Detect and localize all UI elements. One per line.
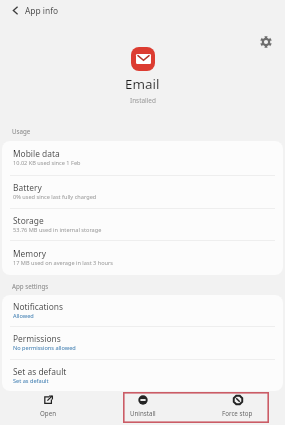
button[interactable]: Memory bbox=[2, 241, 283, 275]
staticText: Storage bbox=[13, 215, 44, 226]
button[interactable]: Settings bbox=[255, 31, 276, 52]
staticText: Open bbox=[40, 409, 56, 417]
other: Uninstall bbox=[138, 395, 148, 405]
staticText: 53.76 MB used in internal storage bbox=[13, 226, 102, 234]
staticText: Uninstall bbox=[130, 409, 156, 417]
button[interactable]: Storage bbox=[2, 209, 283, 240]
staticText: App settings bbox=[12, 282, 49, 290]
staticText: Permissions bbox=[13, 333, 61, 344]
staticText: Email bbox=[125, 75, 160, 93]
button[interactable]: Back bbox=[0, 2, 67, 19]
staticText: Mobile data bbox=[13, 148, 60, 159]
staticText: 17 MB used on average in last 3 hours bbox=[13, 259, 114, 267]
staticText: Notifications bbox=[13, 301, 63, 312]
staticText: Battery bbox=[13, 182, 42, 193]
staticText: No permissions allowed bbox=[13, 344, 76, 352]
other: Back bbox=[11, 6, 20, 15]
button[interactable]: Open bbox=[0, 392, 95, 425]
staticText: Set as default bbox=[13, 366, 67, 377]
staticText: App info bbox=[25, 5, 59, 16]
button[interactable]: Set as default bbox=[2, 360, 283, 391]
staticText: Set as default bbox=[13, 377, 49, 385]
staticText: 10.02 KB used since 1 Feb bbox=[13, 159, 81, 167]
button[interactable]: Mobile data bbox=[2, 141, 283, 175]
button[interactable]: Permissions bbox=[2, 327, 283, 359]
staticText: Force stop bbox=[222, 409, 253, 417]
other: Force stop bbox=[233, 395, 243, 405]
staticText: Allowed bbox=[13, 312, 34, 320]
staticText: Usage bbox=[12, 127, 31, 135]
button[interactable]: Notifications bbox=[2, 295, 283, 326]
staticText: Memory bbox=[13, 248, 47, 259]
button[interactable]: Uninstall bbox=[95, 392, 190, 425]
button[interactable]: Force stop bbox=[190, 392, 285, 425]
staticText: 0% used since last fully charged bbox=[13, 193, 97, 201]
other: Open bbox=[43, 395, 53, 405]
button[interactable]: Battery bbox=[2, 176, 283, 208]
staticText: Installed bbox=[130, 96, 156, 105]
